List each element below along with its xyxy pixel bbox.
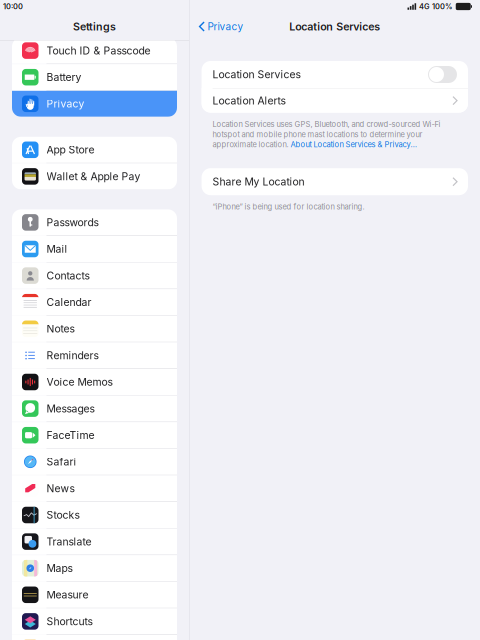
button[interactable]: Calendar [12, 289, 177, 315]
staticText: Touch ID & Passcode [46, 44, 150, 57]
button[interactable]: Translate [12, 529, 177, 555]
staticText: Passwords [46, 216, 98, 229]
button[interactable]: Contacts [12, 263, 177, 289]
staticText: Location Services uses GPS, Bluetooth, a… [213, 120, 441, 129]
staticText: Voice Memos [46, 376, 112, 388]
button[interactable]: Safari [12, 449, 177, 475]
button[interactable]: FaceTime [12, 422, 177, 448]
button[interactable]: Home [12, 635, 177, 640]
staticText: Safari [46, 455, 76, 468]
staticText: 10:00 [3, 2, 23, 11]
staticText: Reminders [46, 349, 98, 362]
button[interactable]: Voice Memos [12, 369, 177, 395]
staticText: Mail [46, 243, 67, 255]
staticText: Location Services [213, 68, 301, 81]
staticText: Maps [46, 562, 72, 574]
staticText: Translate [46, 535, 91, 548]
staticText: Location Alerts [213, 94, 286, 107]
button[interactable]: Passwords [12, 209, 177, 235]
button[interactable]: Privacy [12, 91, 177, 117]
staticText: Shortcuts [46, 615, 92, 628]
button[interactable]: Measure [12, 582, 177, 608]
staticText: Stocks [46, 509, 79, 521]
staticText: Privacy [208, 20, 244, 33]
button[interactable]: Notes [12, 316, 177, 342]
staticText: “iPhone” is being used for location shar… [213, 202, 365, 211]
staticText: Measure [46, 588, 88, 601]
staticText: Contacts [46, 269, 89, 282]
staticText: Battery [46, 71, 81, 83]
button[interactable]: Privacy [190, 15, 244, 38]
staticText: 4G 100% [419, 2, 452, 11]
button[interactable]: Battery [12, 64, 177, 90]
button[interactable]: Shortcuts [12, 608, 177, 634]
button[interactable]: Touch ID & Passcode [12, 38, 177, 64]
staticText: Messages [46, 402, 94, 415]
button[interactable]: Stocks [12, 502, 177, 528]
button[interactable]: Messages [12, 396, 177, 422]
staticText: Notes [46, 322, 74, 335]
staticText: approximate location. [213, 140, 291, 149]
staticText: News [46, 482, 74, 495]
staticText: hotspot and mobile phone mast locations … [213, 130, 423, 139]
staticText: Location Services [289, 20, 380, 33]
button[interactable]: Reminders [12, 342, 177, 368]
button[interactable]: Location Services [428, 66, 457, 83]
button[interactable]: App Store [12, 137, 177, 163]
staticText: Privacy [46, 97, 84, 110]
button[interactable]: Mail [12, 236, 177, 262]
staticText: App Store [46, 143, 94, 156]
staticText: Share My Location [213, 175, 305, 188]
button[interactable]: Share My Location [202, 168, 468, 195]
staticText: FaceTime [46, 429, 94, 441]
button[interactable]: About Location Services & Privacy… [291, 140, 418, 149]
button[interactable]: Maps [12, 555, 177, 581]
staticText: About Location Services & Privacy… [291, 140, 418, 149]
button[interactable]: Location Alerts [202, 89, 468, 113]
staticText: Wallet & Apple Pay [46, 170, 140, 183]
button[interactable]: Wallet & Apple Pay [12, 163, 177, 189]
staticText: Settings [73, 20, 116, 33]
button[interactable]: News [12, 475, 177, 501]
staticText: Calendar [46, 296, 91, 308]
